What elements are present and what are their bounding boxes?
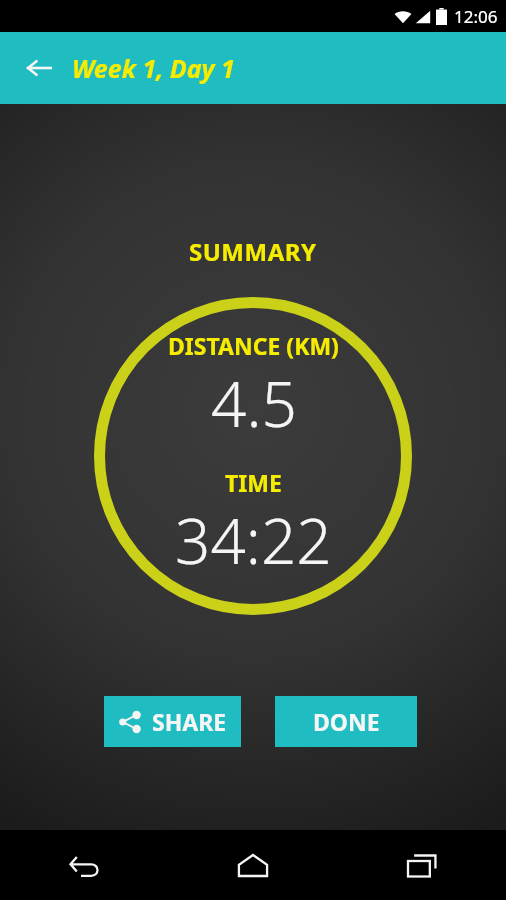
staticText: SUMMARY bbox=[189, 235, 317, 268]
button[interactable]: Home bbox=[168, 830, 337, 900]
staticText: Week 1, Day 1 bbox=[72, 51, 235, 85]
button[interactable]: Back bbox=[22, 51, 56, 85]
button[interactable]: Recent apps bbox=[337, 830, 506, 900]
button[interactable]: Back bbox=[0, 830, 168, 900]
button[interactable]: DONE bbox=[275, 696, 417, 747]
staticText: 4.5 bbox=[211, 361, 297, 445]
staticText: DONE bbox=[313, 706, 380, 737]
staticText: DISTANCE (KM) bbox=[168, 330, 339, 361]
staticText: SHARE bbox=[152, 706, 227, 737]
staticText: 12:06 bbox=[454, 5, 498, 28]
button[interactable]: SHARE bbox=[104, 696, 241, 747]
staticText: 34:22 bbox=[175, 498, 332, 582]
staticText: TIME bbox=[225, 467, 282, 498]
